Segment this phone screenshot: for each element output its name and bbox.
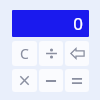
button[interactable]: Backspace: [65, 41, 89, 66]
button[interactable]: Clear: [12, 41, 37, 66]
staticText: C: [20, 44, 29, 63]
staticText: 0: [73, 12, 83, 35]
button[interactable]: Divide: [39, 41, 63, 66]
button[interactable]: 0: [12, 10, 89, 37]
button[interactable]: Subtract: [39, 69, 63, 92]
button[interactable]: Multiply: [12, 69, 37, 92]
button[interactable]: Equals: [65, 69, 89, 92]
